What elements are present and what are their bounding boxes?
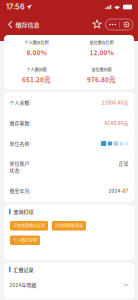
staticText: 8140.00元 bbox=[104, 119, 128, 126]
button[interactable]: Favourite bbox=[91, 19, 102, 30]
staticText: 缴存基数: bbox=[9, 119, 30, 126]
staticText: 缴存信息 bbox=[15, 20, 39, 29]
staticText: 汇缴记录 bbox=[14, 266, 34, 273]
staticText: 单位缴存额 bbox=[91, 67, 111, 73]
button[interactable]: Close bbox=[120, 19, 133, 30]
staticText: 单位名称: bbox=[9, 140, 30, 147]
staticText: 异地转移联系函 bbox=[55, 223, 83, 229]
staticText: 2024-07 bbox=[108, 187, 128, 194]
staticText: 12.00% bbox=[89, 48, 113, 57]
button[interactable]: 2024年明细 bbox=[4, 277, 134, 293]
staticText: 异地贷款缴存证明 bbox=[13, 223, 45, 229]
staticText: 个人缴存比例 bbox=[24, 40, 48, 46]
staticText: 23906.40元 bbox=[101, 99, 128, 106]
staticText: 单位缴存比例 bbox=[89, 40, 113, 46]
button[interactable]: Back bbox=[5, 16, 15, 32]
staticText: 17:56 bbox=[6, 3, 25, 11]
staticText: 8.00% bbox=[26, 48, 46, 57]
staticText: 正常 bbox=[118, 160, 128, 167]
staticText: 个人缴存额 bbox=[26, 67, 46, 73]
staticText: 976.80元 bbox=[87, 75, 116, 84]
button[interactable]: 异地转移联系函 bbox=[52, 221, 86, 230]
button[interactable]: More bbox=[105, 19, 119, 30]
staticText: 2024年明细 bbox=[9, 281, 36, 288]
button[interactable]: 个人缴存证明 bbox=[10, 235, 40, 245]
staticText: 单位账户 状态: bbox=[9, 160, 29, 174]
staticText: 个人缴存证明 bbox=[13, 237, 37, 243]
staticText: 个人余额: bbox=[9, 99, 30, 106]
staticText: 缴至年月: bbox=[9, 187, 30, 194]
button[interactable]: 异地贷款缴存证明 bbox=[10, 221, 48, 230]
staticText: 查询打印 bbox=[14, 208, 34, 215]
staticText: 651.20元 bbox=[22, 75, 51, 84]
